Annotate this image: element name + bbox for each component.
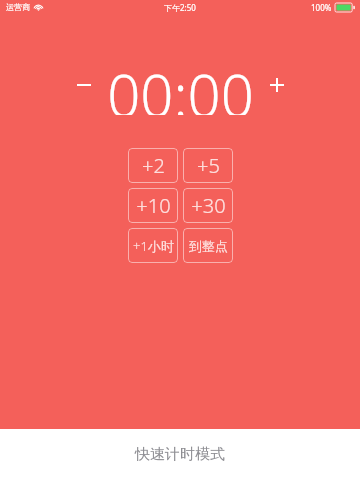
staticText: +1小时 bbox=[133, 237, 174, 255]
button[interactable]: +5 bbox=[183, 148, 233, 183]
button[interactable]: +10 bbox=[128, 188, 178, 223]
button[interactable]: +30 bbox=[183, 188, 233, 223]
staticText: +10 bbox=[136, 192, 171, 219]
staticText: 快速计时模式 bbox=[135, 445, 225, 464]
button[interactable]: 快速计时模式 bbox=[0, 429, 360, 480]
staticText: 运营商 bbox=[6, 2, 30, 12]
button[interactable]: Increase bbox=[262, 70, 292, 100]
staticText: 00:00 bbox=[107, 55, 254, 115]
staticText: 100% bbox=[311, 2, 332, 13]
button[interactable]: +2 bbox=[128, 148, 178, 183]
staticText: +5 bbox=[197, 152, 220, 179]
staticText: 下午2:50 bbox=[164, 2, 196, 13]
staticText: 到整点 bbox=[189, 238, 228, 254]
button[interactable]: Decrease bbox=[69, 70, 99, 100]
staticText: +30 bbox=[191, 192, 226, 219]
staticText: +2 bbox=[142, 152, 165, 179]
button[interactable]: 到整点 bbox=[183, 228, 233, 263]
button[interactable]: +1小时 bbox=[128, 228, 178, 263]
